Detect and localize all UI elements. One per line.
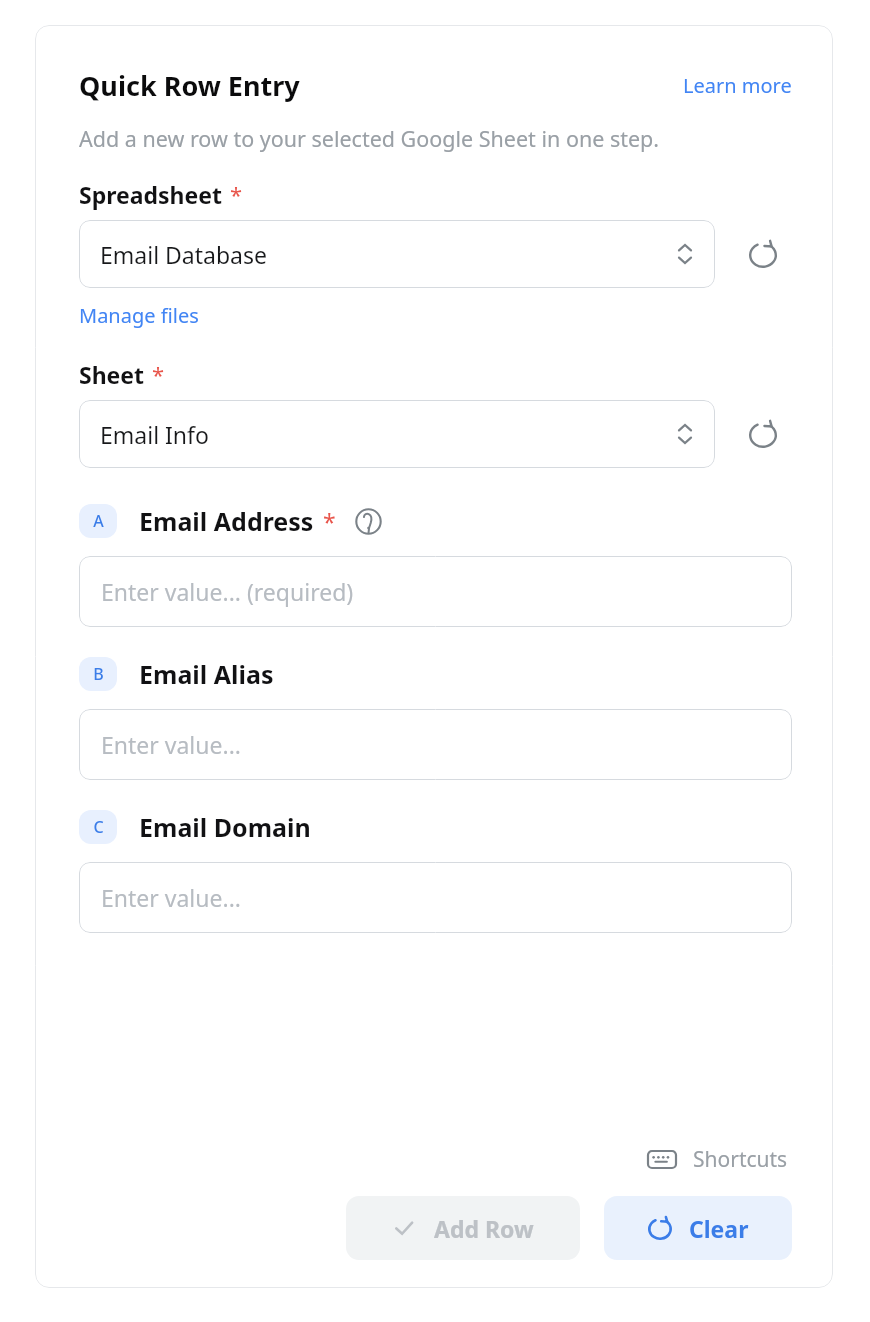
- staticText: *: [152, 359, 165, 389]
- staticText: Add a new row to your selected Google Sh…: [79, 124, 769, 153]
- staticText: Quick Row Entry: [79, 67, 300, 104]
- staticText: A: [93, 510, 104, 532]
- staticText: Shortcuts: [693, 1145, 788, 1174]
- button[interactable]: Email Database: [79, 220, 715, 288]
- staticText: Spreadsheet: [79, 179, 223, 210]
- button[interactable]: Help: [353, 506, 383, 536]
- staticText: Email Alias: [139, 657, 274, 691]
- staticText: Enter value... (required): [101, 576, 354, 607]
- button[interactable]: Enter value...: [79, 709, 792, 780]
- button[interactable]: Enter value...: [79, 862, 792, 933]
- staticText: Enter value...: [101, 729, 241, 760]
- staticText: B: [93, 663, 104, 685]
- staticText: *: [230, 179, 243, 209]
- button[interactable]: Refresh: [741, 412, 785, 456]
- staticText: Clear: [689, 1213, 749, 1244]
- button[interactable]: Email Info: [79, 400, 715, 468]
- button[interactable]: Learn more: [683, 72, 792, 99]
- button[interactable]: Enter value... (required): [79, 556, 792, 627]
- staticText: Enter value...: [101, 882, 241, 913]
- button[interactable]: Shortcuts: [643, 1141, 792, 1178]
- staticText: Sheet: [79, 359, 145, 390]
- button[interactable]: Clear: [604, 1196, 792, 1260]
- staticText: Email Domain: [139, 810, 311, 844]
- staticText: Manage files: [79, 302, 199, 329]
- staticText: C: [93, 816, 104, 838]
- button[interactable]: Manage files: [79, 302, 199, 329]
- staticText: *: [323, 506, 336, 537]
- staticText: Email Info: [100, 419, 209, 450]
- button[interactable]: Refresh: [741, 232, 785, 276]
- staticText: Learn more: [683, 72, 792, 99]
- button[interactable]: Add Row: [346, 1196, 580, 1260]
- staticText: Email Address: [139, 504, 314, 538]
- staticText: Email Database: [100, 239, 267, 270]
- staticText: Add Row: [434, 1213, 534, 1244]
